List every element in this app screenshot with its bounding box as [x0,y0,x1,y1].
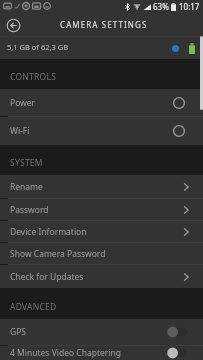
staticText: Rename [10,181,43,193]
button[interactable]: Device Information [0,221,203,242]
button[interactable]: Power [0,89,203,116]
staticText: Show Camera Password [10,248,106,260]
staticText: 4 Minutes Video Chaptering [10,347,121,359]
button[interactable]: Back [6,18,21,33]
button[interactable]: Show Camera Password [0,243,203,264]
staticText: Power [10,97,36,109]
staticText: Check for Updates [10,271,84,283]
button[interactable]: Rename [0,175,203,198]
staticText: SYSTEM [10,157,43,169]
staticText: GPS [10,326,26,338]
staticText: Device Information [10,226,87,238]
button[interactable]: Wi-Fi [0,117,203,145]
button[interactable]: 4 Minutes Video Chaptering [0,346,203,360]
staticText: 63% [153,1,169,12]
staticText: CAMERA SETTINGS [60,19,148,30]
staticText: 5,1 GB of 62,3 GB [7,42,69,52]
staticText: Password [10,204,49,216]
staticText: 10:17 [179,1,200,12]
button[interactable]: Password [0,199,203,220]
staticText: CONTROLS [10,71,57,83]
button[interactable]: GPS [0,319,203,345]
button[interactable]: Check for Updates [0,265,203,288]
staticText: ADVANCED [10,301,57,313]
staticText: Wi-Fi [10,125,30,137]
